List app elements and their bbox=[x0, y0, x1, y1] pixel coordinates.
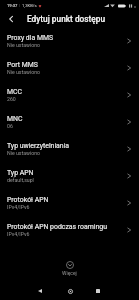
button[interactable]: Typ APN bbox=[0, 162, 139, 189]
staticText: Protokół APN podczas roamingu bbox=[7, 223, 107, 231]
staticText: 19:37 bbox=[7, 3, 18, 8]
button[interactable]: Protokół APN podczas roamingu bbox=[0, 216, 139, 243]
button[interactable]: Typ uwierzytelniania bbox=[0, 135, 139, 162]
staticText: Więcej bbox=[62, 270, 77, 276]
staticText: Nie ustawiono bbox=[7, 42, 40, 48]
staticText: IPv4/IPv6 bbox=[7, 231, 30, 237]
button[interactable]: Więcej bbox=[62, 261, 77, 276]
button[interactable]: Port MMS bbox=[0, 54, 139, 81]
staticText: Nie ustawiono bbox=[7, 69, 40, 75]
staticText: MCC bbox=[7, 88, 22, 96]
staticText: 1,3KB/s bbox=[22, 3, 37, 8]
staticText: Edytuj punkt dostępu bbox=[27, 14, 106, 24]
staticText: 260 bbox=[7, 96, 16, 102]
staticText: Port MMS bbox=[7, 61, 38, 69]
staticText: IPv4/IPv6 bbox=[7, 204, 30, 210]
staticText: Protokół APN bbox=[7, 196, 49, 204]
staticText: Typ APN bbox=[7, 169, 34, 177]
staticText: default,supl bbox=[7, 177, 34, 183]
staticText: 06 bbox=[7, 123, 13, 129]
staticText: Nie ustawiono bbox=[7, 150, 40, 156]
staticText: MNC bbox=[7, 115, 23, 123]
staticText: Proxy dla MMS bbox=[7, 34, 54, 42]
button[interactable]: Back bbox=[0, 11, 21, 27]
staticText: | bbox=[18, 3, 22, 8]
button[interactable]: Back bbox=[27, 282, 53, 300]
button[interactable]: Home bbox=[57, 282, 83, 300]
button[interactable]: Proxy dla MMS bbox=[0, 27, 139, 54]
button[interactable]: Protokół APN bbox=[0, 189, 139, 216]
button[interactable]: Recents bbox=[85, 282, 111, 300]
button[interactable]: MCC bbox=[0, 81, 139, 108]
staticText: Typ uwierzytelniania bbox=[7, 142, 70, 150]
button[interactable]: MNC bbox=[0, 108, 139, 135]
